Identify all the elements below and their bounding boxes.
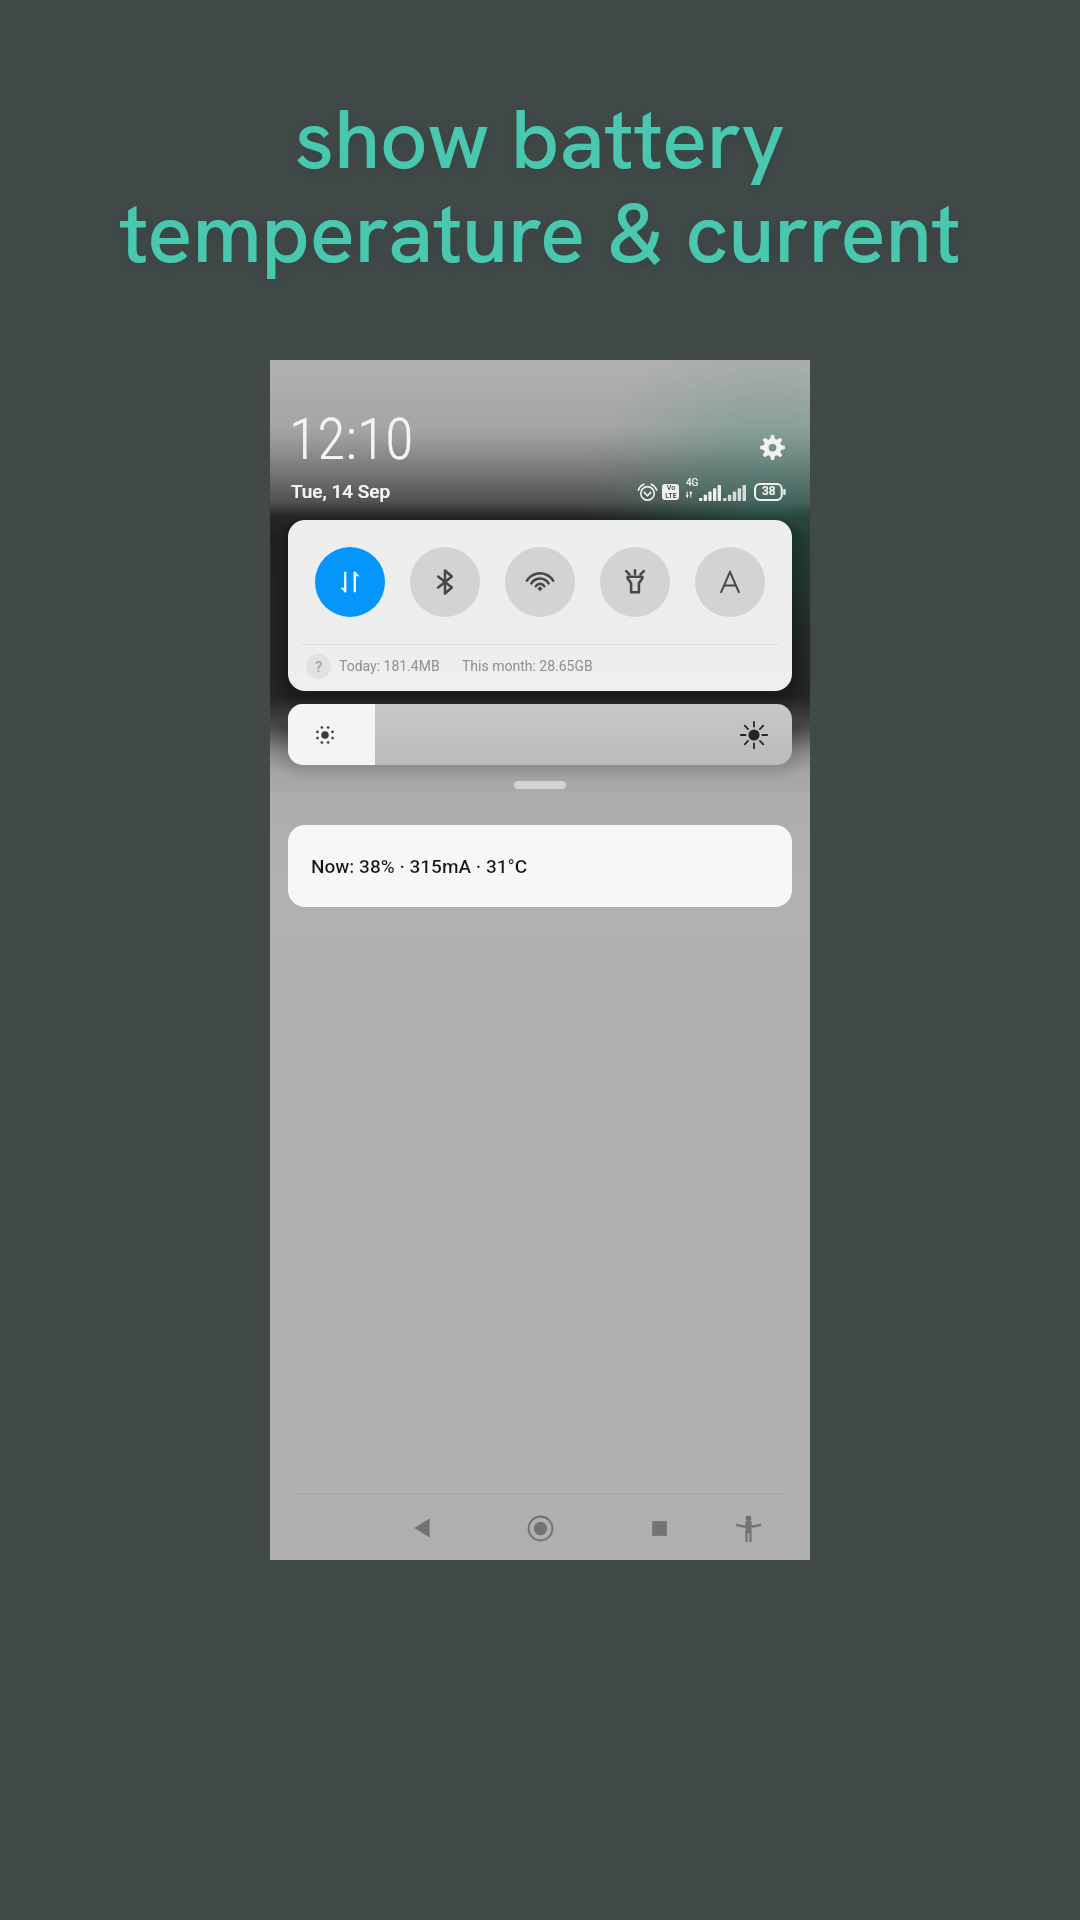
staticText: Tue, 14 Sep xyxy=(291,480,391,502)
staticText: This month: 28.65GB xyxy=(462,658,593,674)
button[interactable] xyxy=(288,704,792,765)
staticText: 38 xyxy=(762,484,776,498)
staticText: Vo LTE xyxy=(665,484,677,500)
button[interactable]: Back xyxy=(394,1500,450,1556)
button[interactable] xyxy=(505,547,575,617)
staticText: 4G xyxy=(686,477,699,489)
button[interactable]: Home xyxy=(512,1500,568,1556)
button[interactable] xyxy=(695,547,765,617)
staticText: Today: 181.4MB xyxy=(339,658,440,674)
button[interactable]: Now: 38% · 315mA · 31°C xyxy=(288,825,792,907)
button[interactable]: Settings xyxy=(760,435,785,460)
staticText: 12:10 xyxy=(289,405,414,473)
button[interactable] xyxy=(600,547,670,617)
button[interactable]: Recents xyxy=(631,1500,687,1556)
button[interactable] xyxy=(315,547,385,617)
button[interactable]: Accessibility xyxy=(720,1500,776,1556)
staticText: Now: 38% · 315mA · 31°C xyxy=(311,855,528,877)
staticText: ? xyxy=(315,658,323,676)
button[interactable] xyxy=(410,547,480,617)
staticText: show battery temperature & current xyxy=(119,85,961,287)
